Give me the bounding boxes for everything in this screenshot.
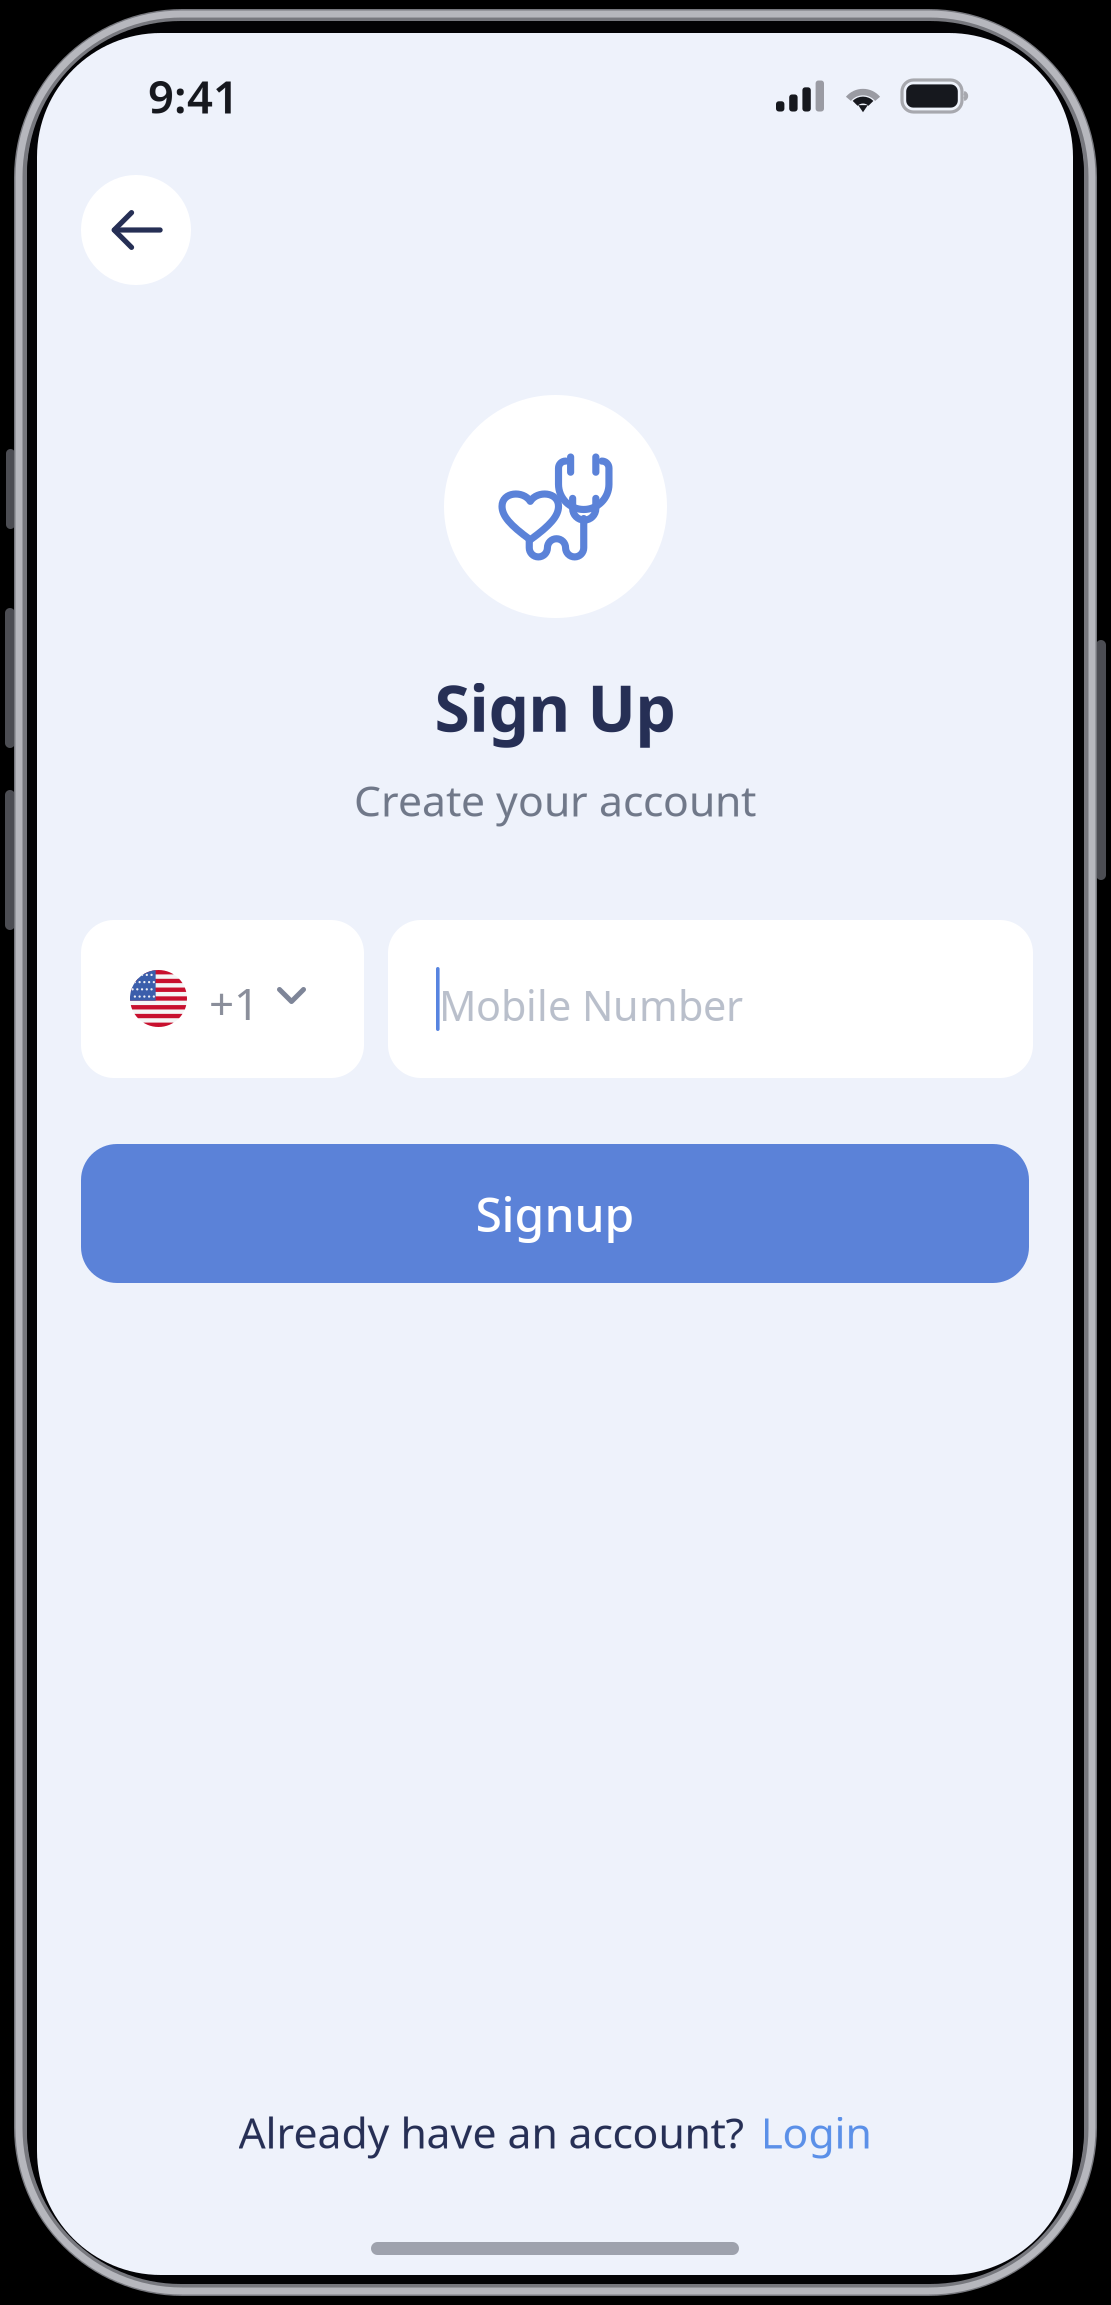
staticText: Signup	[475, 1182, 634, 1245]
button[interactable]: Back	[81, 175, 191, 285]
staticText: Login	[760, 2104, 871, 2160]
staticText: 9:41	[148, 66, 239, 126]
staticText: Already have an account?	[238, 2104, 744, 2160]
button[interactable]: Login	[760, 2104, 871, 2160]
staticText: Create your account	[354, 772, 756, 828]
staticText: +1	[209, 974, 259, 1032]
button[interactable]: Mobile Number	[388, 920, 1033, 1078]
staticText: Mobile Number	[439, 978, 743, 1032]
button[interactable]: Signup	[81, 1144, 1029, 1283]
staticText: Sign Up	[434, 664, 675, 749]
button[interactable]: Country code +1	[81, 920, 364, 1078]
